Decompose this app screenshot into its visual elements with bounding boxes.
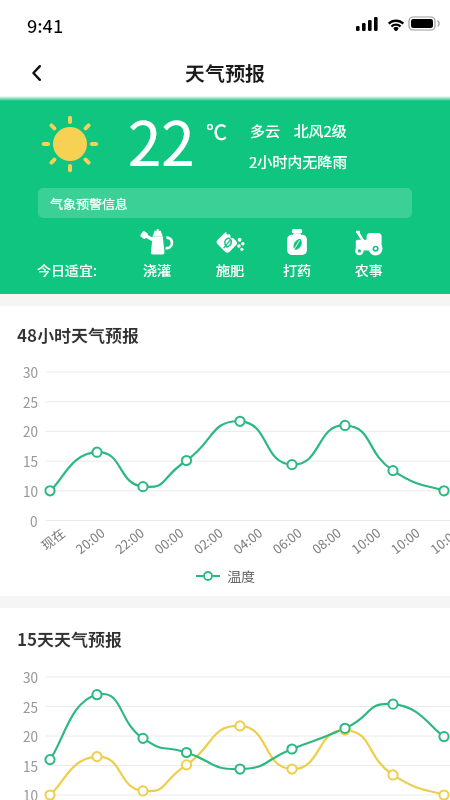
- staticText: 今日适宜:: [37, 260, 97, 280]
- staticText: 15天天气预报: [17, 626, 123, 651]
- staticText: 22: [128, 96, 195, 183]
- staticText: 2小时内无降雨: [249, 151, 348, 173]
- button[interactable]: [20, 56, 54, 90]
- button[interactable]: 浇灌: [131, 228, 183, 280]
- staticText: 9:41: [27, 12, 64, 38]
- staticText: 施肥: [216, 260, 244, 280]
- button[interactable]: 气象预警信息: [38, 188, 412, 218]
- button[interactable]: 打药: [271, 228, 323, 280]
- button[interactable]: [190, 566, 262, 588]
- staticText: 48小时天气预报: [17, 322, 140, 347]
- staticText: 天气预报: [185, 58, 265, 87]
- staticText: 气象预警信息: [50, 194, 129, 213]
- staticText: 浇灌: [143, 260, 171, 280]
- staticText: 打药: [283, 260, 311, 280]
- staticText: 多云 北风2级: [250, 120, 347, 142]
- staticText: ℃: [206, 116, 227, 146]
- staticText: 农事: [355, 260, 383, 280]
- button[interactable]: 施肥: [204, 228, 256, 280]
- button[interactable]: 农事: [343, 228, 395, 280]
